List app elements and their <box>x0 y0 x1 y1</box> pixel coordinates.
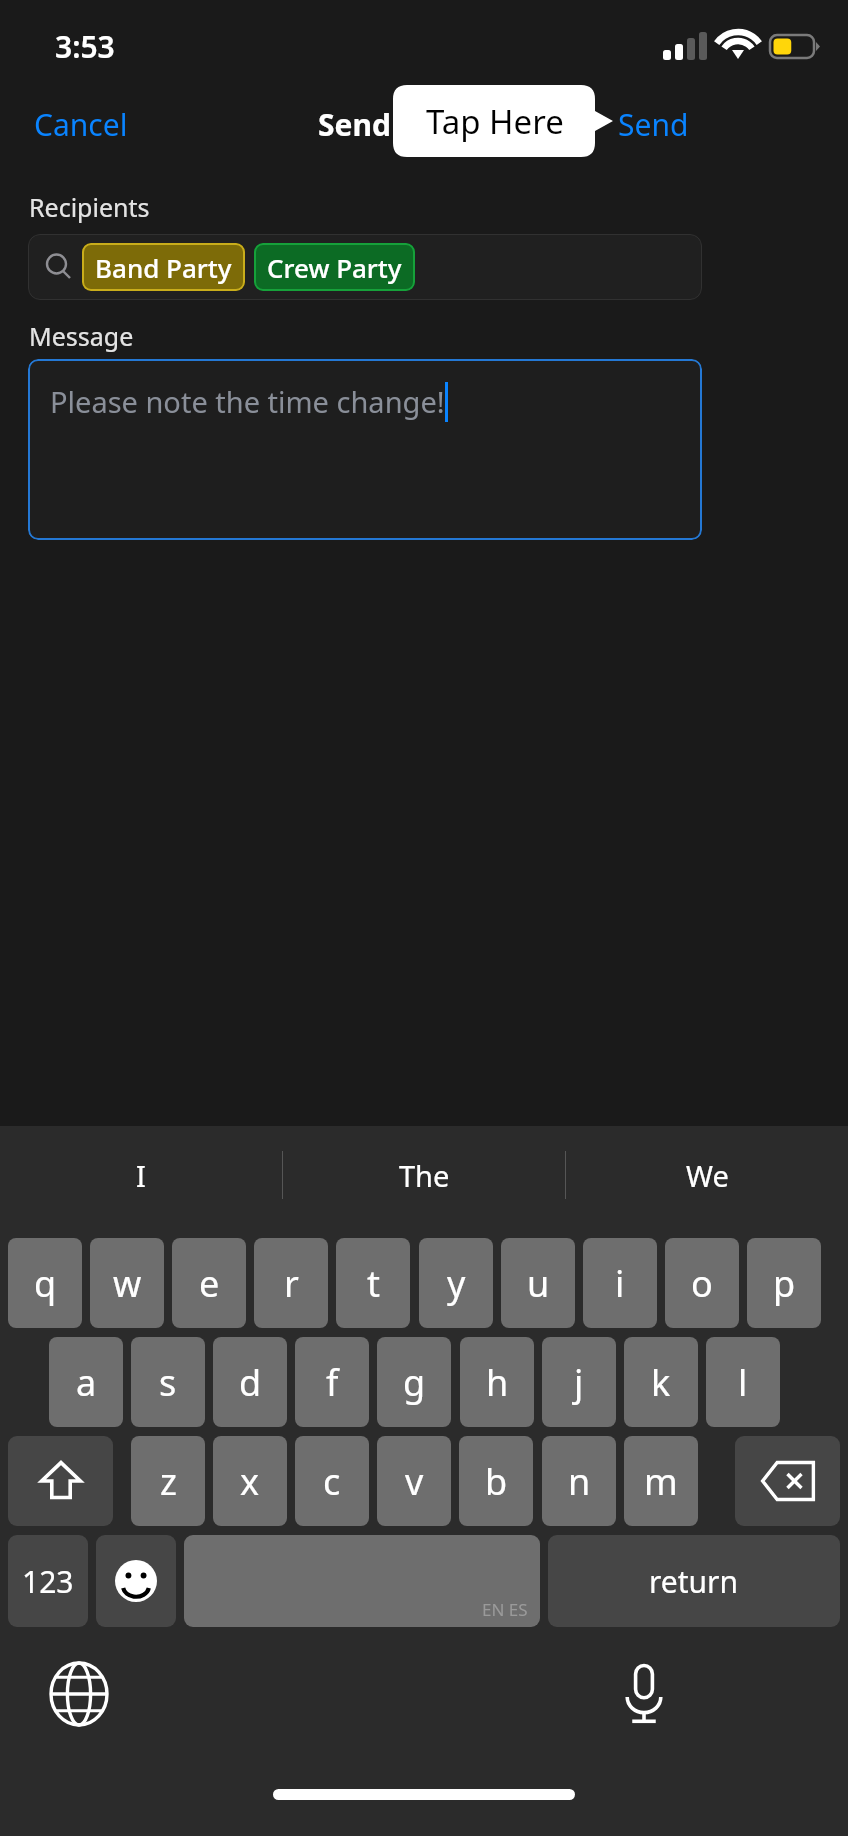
button[interactable]: m <box>624 1436 698 1526</box>
staticText: Tap Here <box>426 99 564 144</box>
button[interactable]: The <box>283 1126 565 1224</box>
staticText: 3:53 <box>55 26 115 67</box>
staticText: d <box>239 1358 262 1407</box>
staticText: Band Party <box>95 250 232 285</box>
staticText: 123 <box>22 1561 74 1602</box>
button[interactable]: r <box>254 1238 328 1328</box>
button[interactable]: k <box>624 1337 698 1427</box>
staticText: h <box>486 1358 509 1407</box>
button[interactable]: w <box>90 1238 164 1328</box>
button[interactable]: Please note the time change! <box>28 359 702 540</box>
button[interactable]: Search <box>28 234 702 300</box>
staticText: The <box>399 1156 450 1195</box>
staticText: x <box>240 1457 260 1506</box>
button[interactable]: 123 <box>8 1535 88 1627</box>
staticText: q <box>34 1259 57 1308</box>
staticText: c <box>323 1457 341 1506</box>
staticText: z <box>160 1457 177 1506</box>
staticText: s <box>159 1358 177 1407</box>
button[interactable]: Band Party <box>82 243 245 291</box>
button[interactable]: e <box>172 1238 246 1328</box>
staticText: I <box>136 1156 146 1195</box>
button[interactable]: I <box>0 1126 282 1224</box>
button[interactable]: o <box>665 1238 739 1328</box>
staticText: Message <box>29 319 134 353</box>
button[interactable]: return <box>548 1535 840 1627</box>
button[interactable]: Cancel <box>28 100 134 149</box>
button[interactable]: y <box>419 1238 493 1328</box>
button[interactable]: Change keyboard <box>40 1655 118 1733</box>
button[interactable]: n <box>542 1436 616 1526</box>
button[interactable]: l <box>706 1337 780 1427</box>
staticText: Send Message <box>0 104 848 145</box>
staticText: m <box>644 1457 678 1506</box>
button[interactable]: j <box>542 1337 616 1427</box>
staticText: e <box>199 1259 220 1308</box>
button[interactable]: Backspace <box>735 1436 840 1526</box>
staticText: k <box>651 1358 671 1407</box>
button[interactable]: Crew Party <box>254 243 415 291</box>
button[interactable]: s <box>131 1337 205 1427</box>
staticText: o <box>691 1259 713 1308</box>
staticText: Cancel <box>34 104 128 145</box>
button[interactable]: d <box>213 1337 287 1427</box>
staticText: Recipients <box>29 190 150 224</box>
staticText: Send <box>618 104 689 145</box>
staticText: w <box>113 1259 142 1308</box>
button[interactable]: i <box>583 1238 657 1328</box>
staticText: EN ES <box>482 1598 528 1621</box>
button[interactable]: z <box>131 1436 205 1526</box>
other: Search <box>44 252 74 282</box>
staticText: l <box>738 1358 748 1407</box>
staticText: Please note the time change! <box>50 382 445 421</box>
button[interactable]: EN ES <box>184 1535 540 1627</box>
button[interactable]: b <box>459 1436 533 1526</box>
button[interactable]: Dictate <box>605 1655 683 1733</box>
button[interactable]: p <box>747 1238 821 1328</box>
button[interactable]: q <box>8 1238 82 1328</box>
button[interactable]: Shift <box>8 1436 113 1526</box>
staticText: g <box>403 1358 426 1407</box>
staticText: n <box>568 1457 591 1506</box>
staticText: We <box>686 1156 729 1195</box>
button[interactable]: Tap Here <box>393 85 613 157</box>
staticText: i <box>615 1259 625 1308</box>
button[interactable]: g <box>377 1337 451 1427</box>
button[interactable]: x <box>213 1436 287 1526</box>
staticText: f <box>326 1358 339 1407</box>
button[interactable]: a <box>49 1337 123 1427</box>
staticText: u <box>527 1259 550 1308</box>
button[interactable]: t <box>336 1238 410 1328</box>
button[interactable]: u <box>501 1238 575 1328</box>
button[interactable]: h <box>460 1337 534 1427</box>
button[interactable]: Send <box>612 100 695 149</box>
button[interactable]: c <box>295 1436 369 1526</box>
staticText: y <box>447 1259 466 1308</box>
staticText: v <box>405 1457 424 1506</box>
button[interactable]: We <box>566 1126 848 1224</box>
button[interactable]: f <box>295 1337 369 1427</box>
staticText: r <box>284 1259 299 1308</box>
staticText: a <box>76 1358 97 1407</box>
staticText: t <box>367 1259 380 1308</box>
staticText: Crew Party <box>267 250 402 285</box>
button[interactable]: v <box>377 1436 451 1526</box>
staticText: b <box>485 1457 508 1506</box>
staticText: j <box>574 1358 584 1407</box>
button[interactable]: Emoji <box>96 1535 176 1627</box>
staticText: return <box>649 1561 739 1602</box>
staticText: p <box>773 1259 796 1308</box>
